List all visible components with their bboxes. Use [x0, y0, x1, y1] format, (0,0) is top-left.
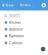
button[interactable]: Profile	[41, 47, 45, 51]
staticText: New	[6, 3, 14, 7]
staticText: Bedroom	[9, 27, 23, 31]
staticText: Cabinet	[9, 41, 22, 45]
staticText: Kitchen	[9, 20, 21, 25]
button[interactable]: Kitchen	[0, 19, 48, 26]
staticText: Browse samples	[20, 3, 36, 7]
button[interactable]: Account	[42, 3, 48, 7]
button[interactable]: New	[0, 2, 14, 8]
button[interactable]: Search	[0, 12, 48, 19]
staticText: Bathroom	[9, 34, 24, 38]
button[interactable]: Cabinet	[0, 39, 48, 46]
button[interactable]: Bedroom	[0, 26, 48, 33]
button[interactable]: Browse samples	[20, 3, 36, 8]
button[interactable]: Bathroom	[0, 33, 48, 39]
staticText: Search	[9, 13, 20, 18]
